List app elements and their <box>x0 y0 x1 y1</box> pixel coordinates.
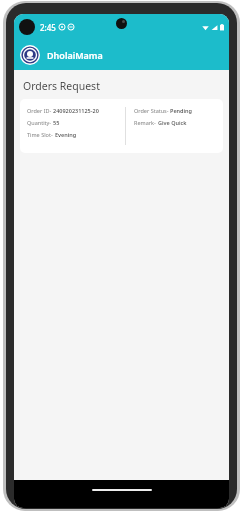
button[interactable]: Order ID- <box>20 99 223 153</box>
staticText: 55 <box>53 119 60 126</box>
staticText: Evening <box>55 131 77 138</box>
staticText: DholaiMama <box>47 49 103 61</box>
staticText: Remark- <box>134 119 158 126</box>
staticText: Order ID- <box>27 107 53 114</box>
staticText: Time Slot- <box>27 131 55 138</box>
staticText: Quantity- <box>27 119 53 126</box>
staticText: 240920231125-20 <box>53 107 99 114</box>
staticText: Pending <box>170 107 193 114</box>
staticText: 2:45 <box>40 22 56 33</box>
staticText: Orders Request <box>23 79 100 93</box>
staticText: Give Quick <box>158 119 187 126</box>
staticText: Order Status- <box>134 107 170 114</box>
